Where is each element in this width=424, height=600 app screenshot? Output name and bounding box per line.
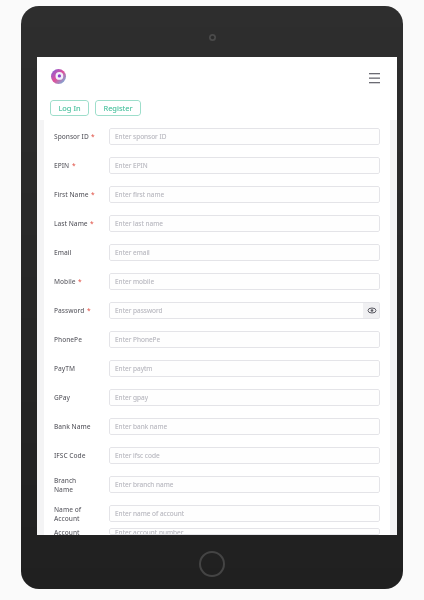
- staticText: Enter paytm: [115, 364, 153, 373]
- staticText: PhonePe: [54, 335, 82, 344]
- button[interactable]: Enter ifsc code: [109, 447, 380, 464]
- button[interactable]: GPay: [44, 383, 390, 412]
- button[interactable]: Enter last name: [109, 215, 380, 232]
- button[interactable]: Mobile: [44, 267, 390, 296]
- button[interactable]: Account Number: [44, 528, 390, 535]
- staticText: Log In: [58, 103, 81, 113]
- staticText: Register: [103, 103, 133, 113]
- button[interactable]: Enter first name: [109, 186, 380, 203]
- button[interactable]: Menu: [363, 66, 385, 88]
- button[interactable]: Name of Account: [44, 499, 390, 528]
- staticText: Enter first name: [115, 190, 165, 199]
- staticText: *: [78, 277, 82, 286]
- button[interactable]: Enter PhonePe: [109, 331, 380, 348]
- staticText: Sponsor ID: [54, 132, 89, 141]
- button[interactable]: PhonePe: [44, 325, 390, 354]
- staticText: Enter last name: [115, 219, 163, 228]
- button[interactable]: Enter branch name: [109, 476, 380, 493]
- button[interactable]: Enter bank name: [109, 418, 380, 435]
- staticText: Enter ifsc code: [115, 451, 160, 460]
- button[interactable]: Enter EPIN: [109, 157, 380, 174]
- staticText: PayTM: [54, 364, 76, 373]
- staticText: Enter gpay: [115, 393, 148, 402]
- staticText: EPIN: [54, 161, 70, 170]
- staticText: Account Number: [54, 528, 94, 535]
- button[interactable]: EPIN: [44, 151, 390, 180]
- button[interactable]: Email: [44, 238, 390, 267]
- staticText: Name of Account: [54, 505, 94, 523]
- staticText: Enter email: [115, 248, 150, 257]
- staticText: Enter name of account: [115, 509, 185, 518]
- button[interactable]: Log In: [50, 100, 89, 116]
- staticText: First Name: [54, 190, 89, 199]
- button[interactable]: Register: [95, 100, 141, 116]
- staticText: *: [91, 132, 95, 141]
- button[interactable]: Enter name of account: [109, 505, 380, 522]
- button[interactable]: Enter email: [109, 244, 380, 261]
- staticText: Email: [54, 248, 72, 257]
- staticText: Password: [54, 306, 85, 315]
- staticText: *: [87, 306, 91, 315]
- button[interactable]: First Name: [44, 180, 390, 209]
- staticText: Enter PhonePe: [115, 335, 161, 344]
- button[interactable]: Branch Name: [44, 470, 390, 499]
- button[interactable]: Enter paytm: [109, 360, 380, 377]
- staticText: Enter EPIN: [115, 161, 148, 170]
- staticText: *: [72, 161, 76, 170]
- staticText: IFSC Code: [54, 451, 86, 460]
- button[interactable]: Sponsor ID: [44, 122, 390, 151]
- staticText: Enter bank name: [115, 422, 168, 431]
- button[interactable]: Last Name: [44, 209, 390, 238]
- staticText: Last Name: [54, 219, 88, 228]
- staticText: Enter account number: [115, 528, 184, 535]
- button[interactable]: Enter gpay: [109, 389, 380, 406]
- button[interactable]: Enter mobile: [109, 273, 380, 290]
- button[interactable]: Show password: [363, 302, 380, 319]
- button[interactable]: IFSC Code: [44, 441, 390, 470]
- button[interactable]: Bank Name: [44, 412, 390, 441]
- staticText: GPay: [54, 393, 71, 402]
- staticText: Bank Name: [54, 422, 91, 431]
- button[interactable]: App logo: [51, 69, 66, 84]
- button[interactable]: Enter password: [109, 302, 380, 319]
- staticText: Enter mobile: [115, 277, 155, 286]
- staticText: Mobile: [54, 277, 76, 286]
- staticText: Enter branch name: [115, 480, 174, 489]
- staticText: Enter password: [115, 306, 163, 315]
- staticText: *: [91, 190, 95, 199]
- button[interactable]: Enter sponsor ID: [109, 128, 380, 145]
- button[interactable]: PayTM: [44, 354, 390, 383]
- staticText: *: [90, 219, 94, 228]
- button[interactable]: Password: [44, 296, 390, 325]
- staticText: Enter sponsor ID: [115, 132, 167, 141]
- button[interactable]: Enter account number: [109, 528, 380, 535]
- staticText: Branch Name: [54, 476, 94, 494]
